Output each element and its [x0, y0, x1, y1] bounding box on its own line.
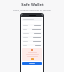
button[interactable]: Token: [22, 48, 42, 61]
button[interactable]: [22, 32, 42, 34]
staticText: Safe Wallet: [21, 2, 44, 7]
staticText: Send, receive and stay in control: [13, 8, 51, 11]
button[interactable]: [22, 28, 42, 30]
button[interactable]: [22, 36, 42, 38]
button[interactable]: [22, 18, 42, 21]
other: Warning: [31, 58, 34, 60]
button[interactable]: Safe Wallet: [0, 2, 64, 7]
button[interactable]: [22, 40, 42, 42]
button[interactable]: [22, 62, 42, 65]
button[interactable]: [22, 44, 42, 46]
button[interactable]: [22, 24, 42, 26]
